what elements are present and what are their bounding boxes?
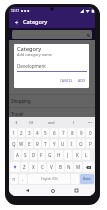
- staticText: and: [48, 120, 55, 125]
- button[interactable]: Backspace: [83, 162, 94, 172]
- staticText: U: [61, 141, 65, 147]
- button[interactable]: ,: [19, 174, 27, 184]
- button[interactable]: Q: [10, 139, 17, 148]
- button[interactable]: Back: [11, 17, 22, 28]
- button[interactable]: T: [42, 139, 49, 148]
- staticText: 12:17: [11, 9, 20, 13]
- staticText: 2: [20, 130, 23, 136]
- button[interactable]: F: [38, 150, 45, 160]
- button[interactable]: H: [55, 150, 63, 160]
- button[interactable]: X: [29, 162, 37, 172]
- staticText: Travel: [11, 111, 24, 117]
- staticText: Of: [29, 120, 34, 125]
- staticText: J: [67, 152, 69, 158]
- button[interactable]: 1: [10, 128, 17, 137]
- button[interactable]: R: [34, 139, 41, 148]
- staticText: 1: [12, 130, 15, 136]
- staticText: Q: [12, 141, 16, 147]
- button[interactable]: E: [26, 139, 33, 148]
- button[interactable]: Travel: [9, 108, 95, 120]
- button[interactable]: L: [82, 150, 90, 160]
- button[interactable]: Menu: [86, 117, 94, 127]
- button[interactable]: Z: [21, 162, 28, 172]
- staticText: I: [71, 141, 73, 147]
- button[interactable]: N: [65, 162, 73, 172]
- button[interactable]: 4: [34, 128, 41, 137]
- button[interactable]: S: [22, 150, 29, 160]
- button[interactable]: 8: [68, 128, 76, 137]
- staticText: 5: [44, 130, 47, 136]
- staticText: G: [48, 152, 52, 158]
- staticText: T: [44, 141, 47, 147]
- button[interactable]: G: [46, 150, 54, 160]
- staticText: 0: [89, 130, 92, 136]
- staticText: 3: [28, 130, 31, 136]
- button[interactable]: and: [48, 117, 55, 127]
- button[interactable]: Done: [80, 174, 94, 184]
- button[interactable]: 3: [26, 128, 33, 137]
- button[interactable]: Search: [12, 30, 92, 39]
- staticText: S: [24, 152, 27, 158]
- button[interactable]: Shift: [10, 162, 20, 172]
- button[interactable]: Y: [50, 139, 58, 148]
- staticText: K: [76, 152, 79, 158]
- button[interactable]: 2: [18, 128, 25, 137]
- button[interactable]: M: [74, 162, 82, 172]
- button[interactable]: Home: [47, 185, 58, 196]
- staticText: X: [32, 164, 35, 170]
- staticText: ADD: [78, 78, 85, 82]
- button[interactable]: V: [47, 162, 55, 172]
- staticText: 4: [36, 130, 39, 136]
- button[interactable]: Shopping: [9, 95, 95, 107]
- button[interactable]: 5: [42, 128, 49, 137]
- staticText: L: [85, 152, 88, 158]
- staticText: P: [89, 141, 92, 147]
- button[interactable]: W: [18, 139, 25, 148]
- button[interactable]: 6: [50, 128, 58, 137]
- staticText: 9: [80, 130, 83, 136]
- button[interactable]: Symbols: [10, 174, 18, 184]
- staticText: A: [16, 152, 19, 158]
- staticText: Shopping: [11, 98, 31, 104]
- staticText: W: [19, 141, 24, 147]
- button[interactable]: B: [56, 162, 64, 172]
- button[interactable]: More suggestions: [12, 117, 20, 127]
- button[interactable]: J: [64, 150, 72, 160]
- staticText: Category: [17, 45, 42, 53]
- staticText: Done: [83, 177, 91, 181]
- staticText: CANCEL: [60, 78, 73, 82]
- staticText: ,: [22, 176, 24, 182]
- staticText: 6: [53, 130, 56, 136]
- button[interactable]: C: [38, 162, 46, 172]
- staticText: M: [76, 164, 81, 170]
- button[interactable]: English (US): [28, 174, 70, 184]
- button[interactable]: D: [30, 150, 37, 160]
- button[interactable]: U: [59, 139, 67, 148]
- staticText: E: [28, 141, 31, 147]
- staticText: V: [50, 164, 53, 170]
- button[interactable]: K: [73, 150, 81, 160]
- staticText: D: [32, 152, 36, 158]
- button[interactable]: I: [73, 117, 75, 127]
- staticText: 7: [62, 130, 65, 136]
- staticText: I: [73, 120, 75, 125]
- button[interactable]: Back: [22, 185, 33, 196]
- staticText: Z: [23, 164, 26, 170]
- staticText: English (US): [41, 177, 58, 181]
- button[interactable]: I: [68, 139, 76, 148]
- button[interactable]: A: [14, 150, 21, 160]
- button[interactable]: 0: [86, 128, 94, 137]
- button[interactable]: 7: [59, 128, 67, 137]
- button[interactable]: CANCEL: [58, 76, 75, 84]
- staticText: B: [59, 164, 62, 170]
- staticText: Category: [23, 18, 48, 26]
- staticText: ?1: [12, 177, 16, 182]
- button[interactable]: Recents: [71, 185, 82, 196]
- button[interactable]: Of: [29, 117, 34, 127]
- button[interactable]: P: [86, 139, 94, 148]
- button[interactable]: ADD: [76, 76, 87, 84]
- button[interactable]: .: [71, 174, 79, 184]
- button[interactable]: 9: [77, 128, 85, 137]
- staticText: C: [41, 164, 44, 170]
- button[interactable]: O: [77, 139, 85, 148]
